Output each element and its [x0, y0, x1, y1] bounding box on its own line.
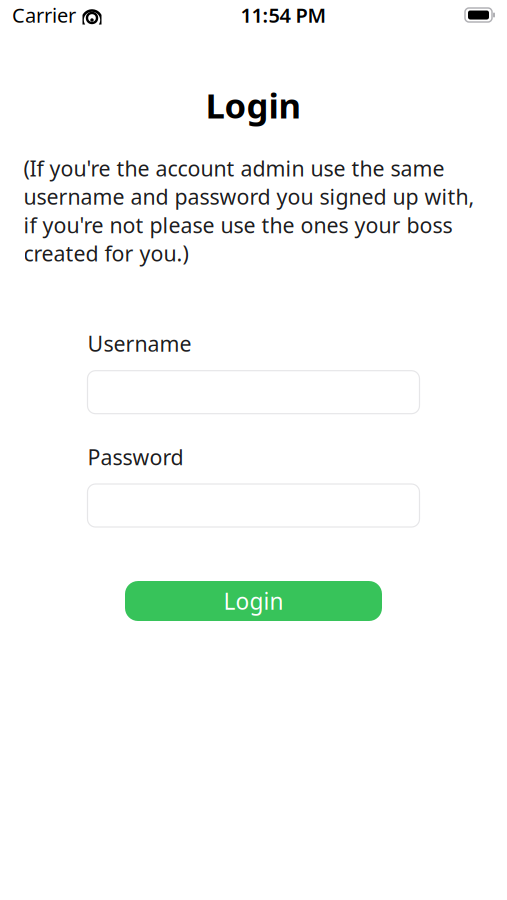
- staticText: Carrier: [12, 2, 76, 28]
- staticText: Login: [205, 82, 301, 128]
- button[interactable]: Login: [125, 581, 382, 621]
- staticText: Username: [87, 329, 191, 358]
- staticText: Password: [87, 443, 183, 471]
- staticText: Login: [223, 586, 283, 616]
- staticText: (If you're the account admin use the sam…: [23, 154, 474, 267]
- staticText: 11:54 PM: [240, 2, 326, 28]
